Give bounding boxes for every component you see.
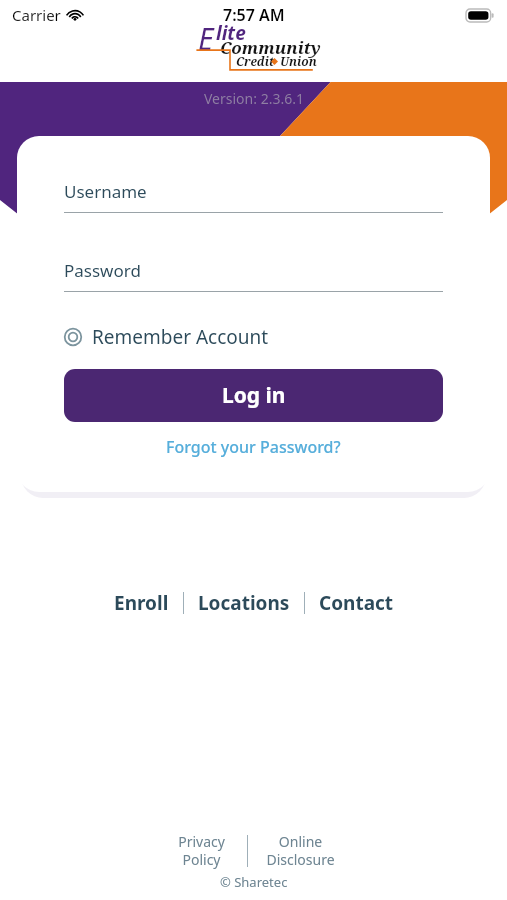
staticText: 7:57 AM: [223, 4, 285, 26]
staticText: Community: [220, 36, 321, 59]
staticText: Version: 2.3.6.1: [204, 89, 304, 108]
staticText: Contact: [319, 590, 394, 616]
staticText: Locations: [198, 590, 290, 616]
staticText: Password: [64, 259, 141, 282]
button[interactable]: Online Disclosure: [248, 832, 353, 869]
staticText: Carrier: [12, 5, 61, 25]
staticText: lite: [216, 20, 246, 46]
staticText: © Sharetec: [220, 873, 288, 891]
button[interactable]: Enroll: [100, 586, 183, 620]
button[interactable]: Locations: [184, 586, 304, 620]
button[interactable]: Username: [64, 180, 443, 213]
button[interactable]: Remember Account: [64, 324, 443, 350]
staticText: Forgot your Password?: [166, 436, 341, 458]
staticText: Union: [280, 53, 317, 69]
staticText: Privacy Policy: [178, 832, 225, 869]
button[interactable]: Password: [64, 259, 443, 292]
button[interactable]: Log in: [64, 369, 443, 422]
staticText: Credit: [236, 53, 275, 69]
staticText: Remember Account: [92, 324, 269, 350]
staticText: Username: [64, 180, 147, 203]
staticText: Enroll: [114, 590, 169, 616]
staticText: Online Disclosure: [266, 832, 335, 869]
button[interactable]: Privacy Policy: [155, 832, 247, 869]
staticText: E: [198, 18, 214, 59]
button[interactable]: Forgot your Password?: [64, 436, 443, 458]
button[interactable]: Contact: [305, 586, 408, 620]
staticText: Log in: [222, 381, 286, 410]
